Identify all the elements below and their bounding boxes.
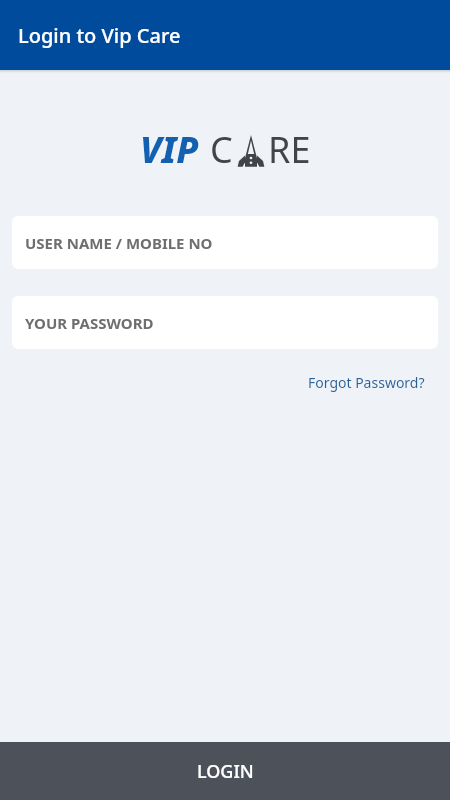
- staticText: RE: [268, 125, 311, 174]
- staticText: YOUR PASSWORD: [25, 313, 154, 333]
- staticText: Forgot Password?: [308, 373, 425, 392]
- staticText: C: [210, 125, 233, 174]
- button[interactable]: LOGIN: [0, 742, 450, 800]
- staticText: VIP: [140, 125, 199, 174]
- button[interactable]: USER NAME / MOBILE NO: [12, 216, 438, 269]
- staticText: LOGIN: [197, 759, 254, 784]
- staticText: Login to Vip Care: [18, 22, 181, 49]
- button[interactable]: Forgot Password?: [300, 369, 450, 396]
- staticText: USER NAME / MOBILE NO: [25, 233, 213, 253]
- button[interactable]: YOUR PASSWORD: [12, 296, 438, 349]
